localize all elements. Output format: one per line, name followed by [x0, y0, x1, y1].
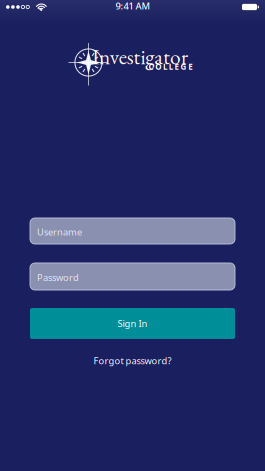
staticText: COLLEGE	[148, 61, 192, 72]
staticText: Forgot password?	[93, 354, 171, 367]
button[interactable]: Sign In	[30, 308, 235, 339]
staticText: Username	[37, 226, 82, 238]
button[interactable]: Forgot password?	[93, 354, 171, 367]
button[interactable]: Password	[30, 263, 235, 290]
staticText: Investigator	[92, 43, 188, 71]
button[interactable]: Username	[30, 218, 235, 244]
staticText: Password	[37, 271, 79, 283]
staticText: 9:41 AM	[115, 0, 150, 12]
staticText: Sign In	[117, 317, 147, 330]
